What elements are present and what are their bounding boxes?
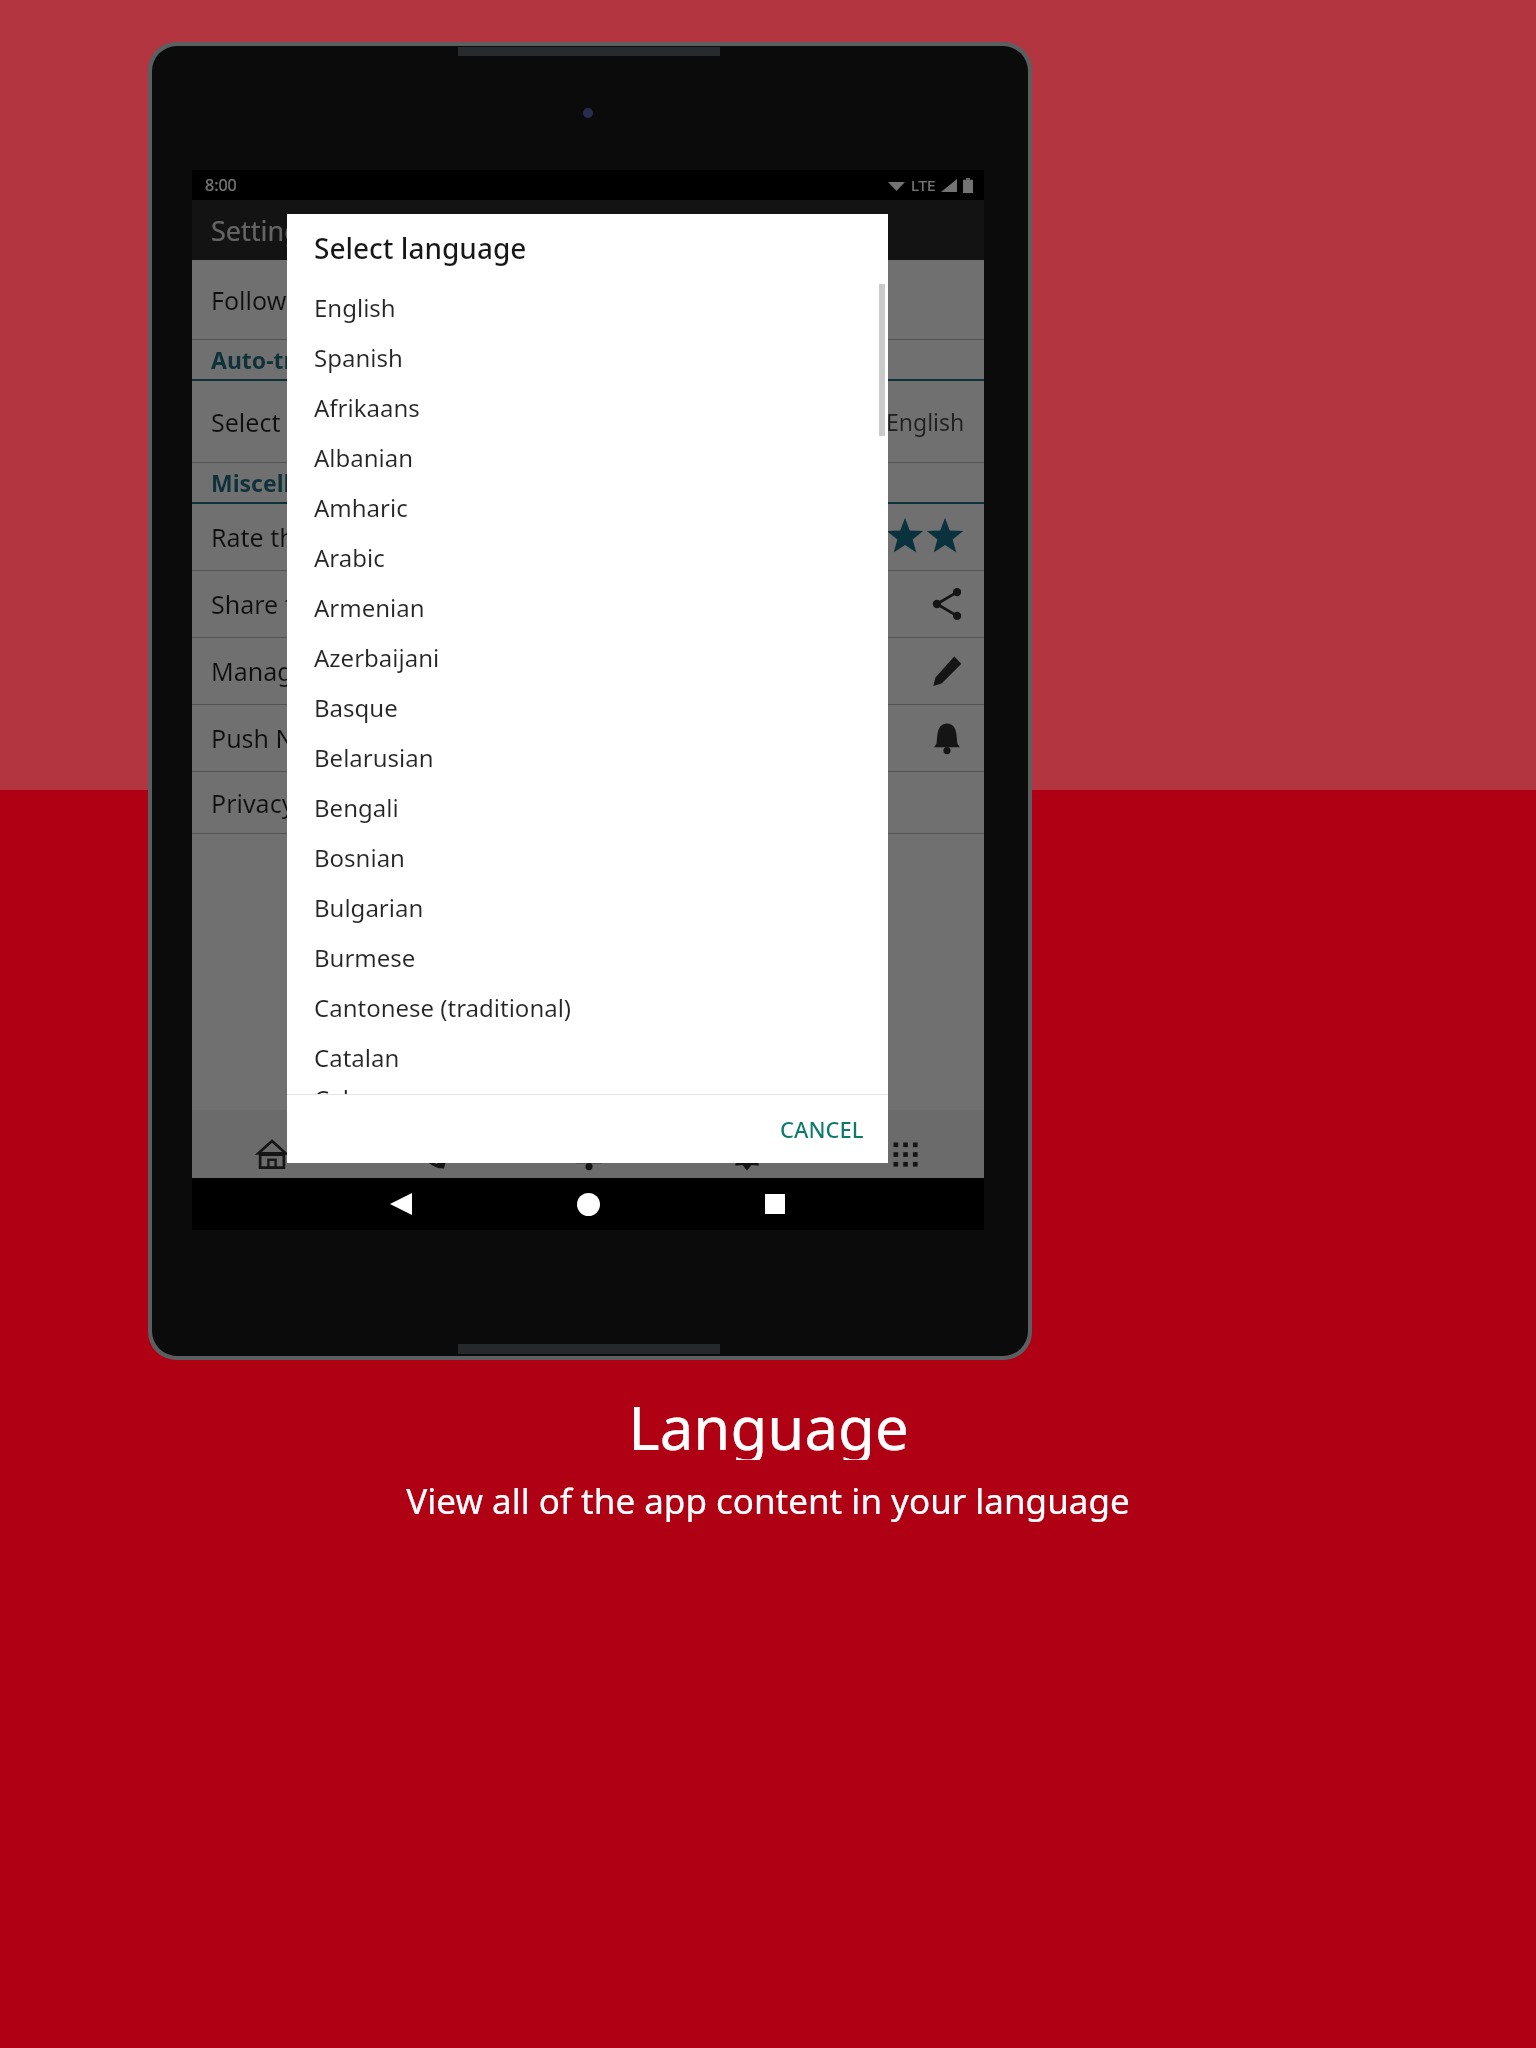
staticText: Burmese [314, 941, 416, 974]
button[interactable]: Bosnian [287, 832, 888, 882]
button[interactable]: Privacy Policy [192, 772, 984, 834]
staticText: Manage Account [211, 654, 409, 688]
staticText: Basque [314, 691, 398, 724]
button[interactable]: Azerbaijani [287, 632, 888, 682]
staticText: Follow school [211, 283, 369, 317]
staticText: Auto-translate [211, 344, 379, 375]
button[interactable]: Armenian [287, 582, 888, 632]
staticText: Bengali [314, 791, 399, 824]
button[interactable]: Burmese [287, 932, 888, 982]
staticText: Miscellaneous [211, 467, 374, 498]
button[interactable]: Amharic [287, 482, 888, 532]
staticText: Arabic [314, 541, 385, 574]
button[interactable]: Share this App [192, 571, 984, 638]
button[interactable]: Bulgarian [287, 882, 888, 932]
staticText: Spanish [314, 341, 403, 374]
button[interactable]: Cantonese (traditional) [287, 982, 888, 1032]
staticText: Push Notifications [211, 721, 425, 755]
staticText: Azerbaijani [314, 641, 440, 674]
staticText: CANCEL [780, 1114, 864, 1144]
staticText: Belarusian [314, 741, 434, 774]
button[interactable]: Bengali [287, 782, 888, 832]
button[interactable]: Settings [668, 1110, 826, 1228]
staticText: Afrikaans [314, 391, 420, 424]
button[interactable]: Catalan [287, 1032, 888, 1082]
button[interactable]: Belarusian [287, 732, 888, 782]
button[interactable]: Follow school [192, 260, 984, 340]
staticText: Cebuano [314, 1082, 416, 1094]
staticText: 8:00 [205, 174, 237, 196]
button[interactable]: English [287, 282, 888, 332]
button[interactable]: Push Notifications [192, 705, 984, 772]
button[interactable]: Home [192, 1110, 351, 1228]
button[interactable]: Manage Account [192, 638, 984, 705]
button[interactable]: Spanish [287, 332, 888, 382]
button[interactable]: Back [372, 1178, 430, 1230]
staticText: Rate this App [211, 520, 367, 554]
button[interactable]: Afrikaans [287, 382, 888, 432]
button[interactable]: Notification [510, 1110, 668, 1228]
staticText: Privacy Policy [211, 786, 369, 820]
staticText: English [314, 291, 396, 324]
staticText: LTE [911, 175, 936, 195]
button[interactable]: CANCEL [766, 1103, 878, 1155]
button[interactable]: Arabic [287, 532, 888, 582]
button[interactable]: Recents [746, 1178, 804, 1230]
button[interactable]: Rate this App [192, 504, 984, 571]
button[interactable]: Home [559, 1178, 617, 1230]
staticText: Settings [717, 1180, 778, 1202]
staticText: Armenian [314, 591, 425, 624]
staticText: Select language [314, 229, 527, 267]
staticText: Settings [211, 212, 314, 249]
staticText: Amharic [314, 491, 408, 524]
staticText: Tip Line [401, 1180, 460, 1202]
button[interactable]: Cebuano [287, 1082, 888, 1094]
button[interactable]: More [826, 1110, 984, 1228]
staticText: Cantonese (traditional) [314, 991, 572, 1024]
button[interactable]: Select language [192, 381, 984, 463]
staticText: Catalan [314, 1041, 400, 1074]
staticText: Bosnian [314, 841, 405, 874]
staticText: English [886, 406, 965, 437]
button[interactable]: Basque [287, 682, 888, 732]
staticText: Share this App [211, 587, 381, 621]
staticText: Bulgarian [314, 891, 424, 924]
staticText: Select language [211, 405, 398, 439]
staticText: Notification [545, 1180, 633, 1202]
staticText: Albanian [314, 441, 414, 474]
staticText: View all of the app content in your lang… [406, 1477, 1130, 1525]
button[interactable]: Tip Line [351, 1110, 510, 1228]
staticText: Language [628, 1386, 909, 1460]
button[interactable]: Albanian [287, 432, 888, 482]
